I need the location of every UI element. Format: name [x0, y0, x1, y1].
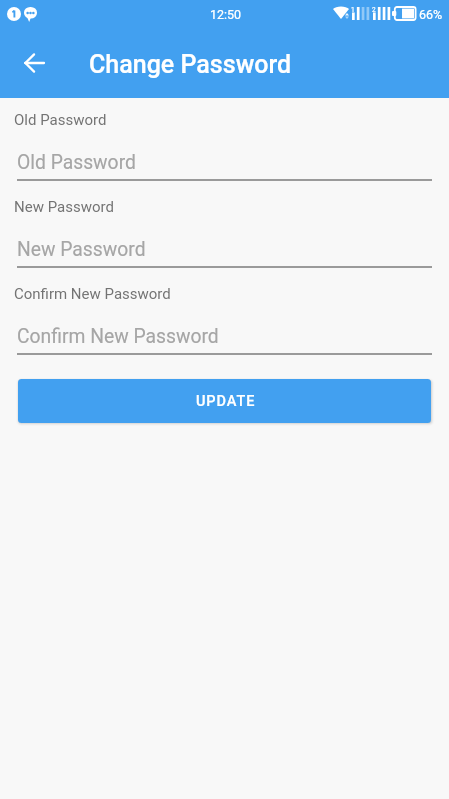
- staticText: UPDATE: [196, 393, 256, 410]
- staticText: 66%: [419, 7, 443, 22]
- staticText: New Password: [14, 198, 114, 216]
- staticText: Old Password: [14, 111, 107, 129]
- button[interactable]: New Password: [17, 228, 432, 268]
- button[interactable]: Old Password: [17, 141, 432, 181]
- staticText: Change Password: [89, 50, 292, 79]
- staticText: Confirm New Password: [17, 325, 219, 348]
- staticText: 2: [372, 6, 376, 14]
- staticText: 1: [351, 6, 355, 14]
- staticText: New Password: [17, 238, 146, 261]
- staticText: Old Password: [17, 151, 136, 174]
- button[interactable]: UPDATE: [18, 379, 431, 423]
- staticText: 12:50: [210, 7, 242, 22]
- staticText: Confirm New Password: [14, 285, 171, 303]
- button[interactable]: Back: [14, 43, 54, 83]
- button[interactable]: Confirm New Password: [17, 315, 432, 355]
